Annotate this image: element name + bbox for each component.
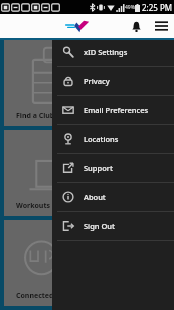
button[interactable]: Notifications bbox=[124, 14, 148, 38]
button[interactable]: Connected bbox=[4, 220, 174, 306]
button[interactable]: Support bbox=[52, 154, 174, 182]
button[interactable]: xID Settings bbox=[52, 38, 174, 66]
staticText: Email Preferences bbox=[84, 105, 149, 115]
button[interactable]: Email Preferences bbox=[52, 96, 174, 124]
staticText: Privacy bbox=[84, 76, 110, 86]
staticText: Connected bbox=[16, 291, 54, 301]
button[interactable]: Menu bbox=[148, 14, 174, 38]
button[interactable]: Privacy bbox=[52, 67, 174, 95]
staticText: Sign Out bbox=[84, 221, 115, 231]
staticText: 49% bbox=[125, 4, 135, 11]
staticText: Locations bbox=[84, 134, 119, 144]
staticText: 2:25 PM bbox=[142, 2, 173, 13]
button[interactable]: Locations bbox=[52, 125, 174, 153]
staticText: Support bbox=[84, 163, 113, 173]
staticText: Find a Club bbox=[16, 111, 55, 121]
button[interactable]: Sign Out bbox=[52, 212, 174, 240]
staticText: Workouts bbox=[16, 201, 50, 211]
button[interactable]: Find a Club bbox=[4, 40, 174, 126]
button[interactable]: About bbox=[52, 183, 174, 211]
staticText: About bbox=[84, 192, 106, 202]
button[interactable]: Workouts bbox=[4, 130, 174, 216]
staticText: xID Settings bbox=[84, 47, 128, 57]
